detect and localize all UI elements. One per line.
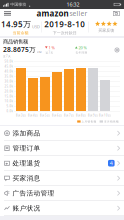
staticText: 中国移动 <box>10 2 26 7</box>
button[interactable]: 2019-8-10 <box>41 18 88 36</box>
staticText: 近7天 <box>3 54 11 58</box>
staticText: 15.0k <box>4 95 12 98</box>
staticText: 30.0k <box>4 80 12 83</box>
staticText: 8月5日 <box>40 114 50 117</box>
staticText: 2019-8-10 <box>44 19 85 29</box>
staticText: 16:32 <box>67 1 80 8</box>
staticText: 当前余额 <box>12 30 28 35</box>
staticText: 45.0k <box>4 65 12 68</box>
staticText: 下一次付款日 <box>53 30 77 35</box>
staticText: 35.0k <box>4 75 12 78</box>
button[interactable]: 处理退货 <box>0 156 124 171</box>
staticText: 买家消息 <box>13 174 41 182</box>
staticText: seller <box>70 9 88 18</box>
staticText: 14.95万 <box>1 19 31 29</box>
staticText: 25.0k <box>4 85 12 88</box>
staticText: 50.0k <box>4 60 12 63</box>
staticText: 本月销售额 <box>104 120 119 123</box>
staticText: 商品销售额 <box>3 38 28 45</box>
button[interactable]: 广告活动管理 <box>0 186 124 201</box>
button[interactable]: 买家消息 <box>0 171 124 186</box>
staticText: 8月10日 <box>99 114 111 117</box>
staticText: 上月销售额 <box>82 120 97 123</box>
staticText: 8月8日 <box>76 114 86 117</box>
staticText: 4 <box>110 160 113 167</box>
button[interactable]: 账户状况 <box>0 201 124 216</box>
staticText: 管理订单 <box>13 144 41 152</box>
button[interactable]: 添加商品 <box>0 126 124 141</box>
staticText: 8月4日 <box>28 114 38 117</box>
staticText: USD <box>32 24 40 29</box>
button[interactable]: Chart settings <box>110 45 124 57</box>
staticText: 8月7日 <box>64 114 74 117</box>
staticText: 10.0k <box>4 100 12 103</box>
staticText: 近7天 <box>46 51 54 54</box>
staticText: 处理退货 <box>13 159 41 167</box>
staticText: 5.0k <box>6 104 12 108</box>
staticText: 1 % <box>48 45 54 50</box>
staticText: 广告活动管理 <box>13 189 55 197</box>
staticText: 添加商品 <box>13 129 41 137</box>
staticText: 28.8675万 <box>3 45 36 54</box>
staticText: 去年同期 <box>76 51 88 54</box>
staticText: 8月3日 <box>16 114 26 117</box>
button[interactable]: 买家反馈 <box>88 18 124 36</box>
staticText: 0.0k <box>6 109 12 113</box>
staticText: USD <box>37 50 42 54</box>
staticText: 账户状况 <box>13 204 41 212</box>
button[interactable]: Scan barcode <box>109 9 124 18</box>
staticText: 20.0k <box>4 90 12 93</box>
staticText: 8月9日 <box>88 114 98 117</box>
staticText: 买家反馈 <box>98 28 114 33</box>
staticText: amazon <box>36 8 68 19</box>
staticText: 40.0k <box>4 70 12 73</box>
staticText: 8月6日 <box>52 114 62 117</box>
button[interactable]: 14.95万 <box>0 18 41 36</box>
button[interactable]: 管理订单 <box>0 141 124 156</box>
button[interactable]: Menu <box>0 9 15 18</box>
staticText: 20 % <box>78 45 86 50</box>
